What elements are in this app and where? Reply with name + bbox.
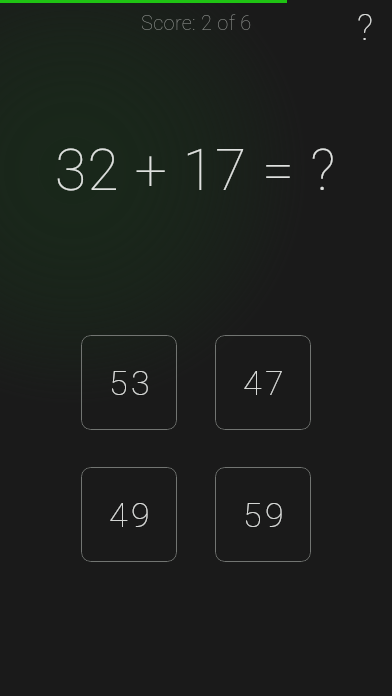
button[interactable]: 49 bbox=[81, 467, 177, 562]
button[interactable]: 59 bbox=[215, 467, 311, 562]
button[interactable]: Help bbox=[344, 4, 386, 50]
staticText: ? bbox=[357, 6, 373, 49]
staticText: 32 + 17 = ? bbox=[55, 137, 337, 204]
button[interactable]: 47 bbox=[215, 335, 311, 430]
staticText: 53 bbox=[109, 363, 154, 403]
staticText: 49 bbox=[109, 495, 154, 535]
staticText: Score: 2 of 6 bbox=[141, 11, 252, 34]
button[interactable]: 53 bbox=[81, 335, 177, 430]
staticText: 47 bbox=[243, 363, 288, 403]
staticText: 59 bbox=[243, 495, 288, 535]
